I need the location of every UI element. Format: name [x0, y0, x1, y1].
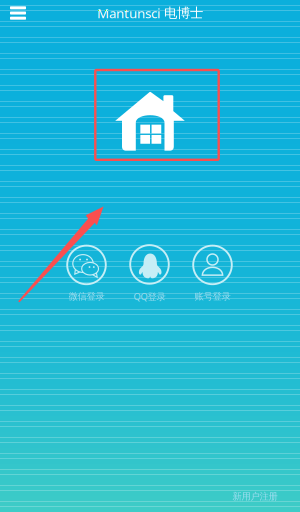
button[interactable]: 微信登录 [55, 244, 118, 302]
button[interactable]: Menu [0, 0, 34, 26]
staticText: 账号登录 [194, 291, 230, 302]
button[interactable]: QQ登录 [118, 244, 181, 303]
staticText: QQ登录 [133, 290, 165, 303]
staticText: 电博士 [164, 5, 203, 21]
button[interactable]: 账号登录 [181, 244, 244, 302]
staticText: Mantunsci [97, 4, 160, 22]
staticText: 微信登录 [68, 291, 104, 302]
staticText: 新用户注册 [232, 490, 277, 502]
button[interactable]: 新用户注册 [224, 485, 285, 507]
